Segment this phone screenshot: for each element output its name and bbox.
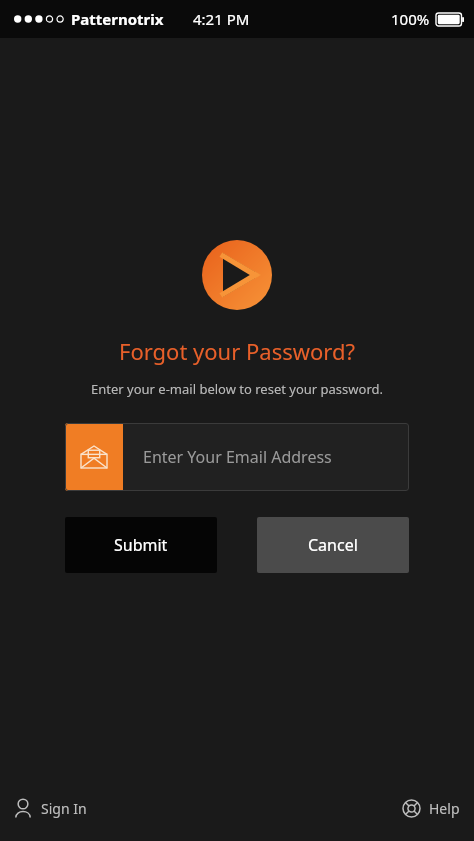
button[interactable]: Sign In (14, 798, 87, 818)
button[interactable]: Email (65, 423, 409, 491)
staticText: Submit (114, 534, 168, 556)
staticText: Help (429, 799, 460, 818)
staticText: Cancel (308, 534, 358, 556)
staticText: Forgot your Password? (0, 336, 474, 366)
staticText: Sign In (41, 799, 87, 818)
staticText: 4:21 PM (193, 9, 250, 29)
button[interactable]: Submit (65, 517, 217, 573)
staticText: Enter your e-mail below to reset your pa… (0, 380, 474, 398)
staticText: 100% (391, 9, 430, 29)
button[interactable]: Help (402, 799, 460, 818)
staticText: Enter Your Email Address (143, 446, 332, 468)
staticText: Patternotrix (71, 9, 164, 29)
button[interactable]: Cancel (257, 517, 409, 573)
other: Email (65, 423, 123, 491)
